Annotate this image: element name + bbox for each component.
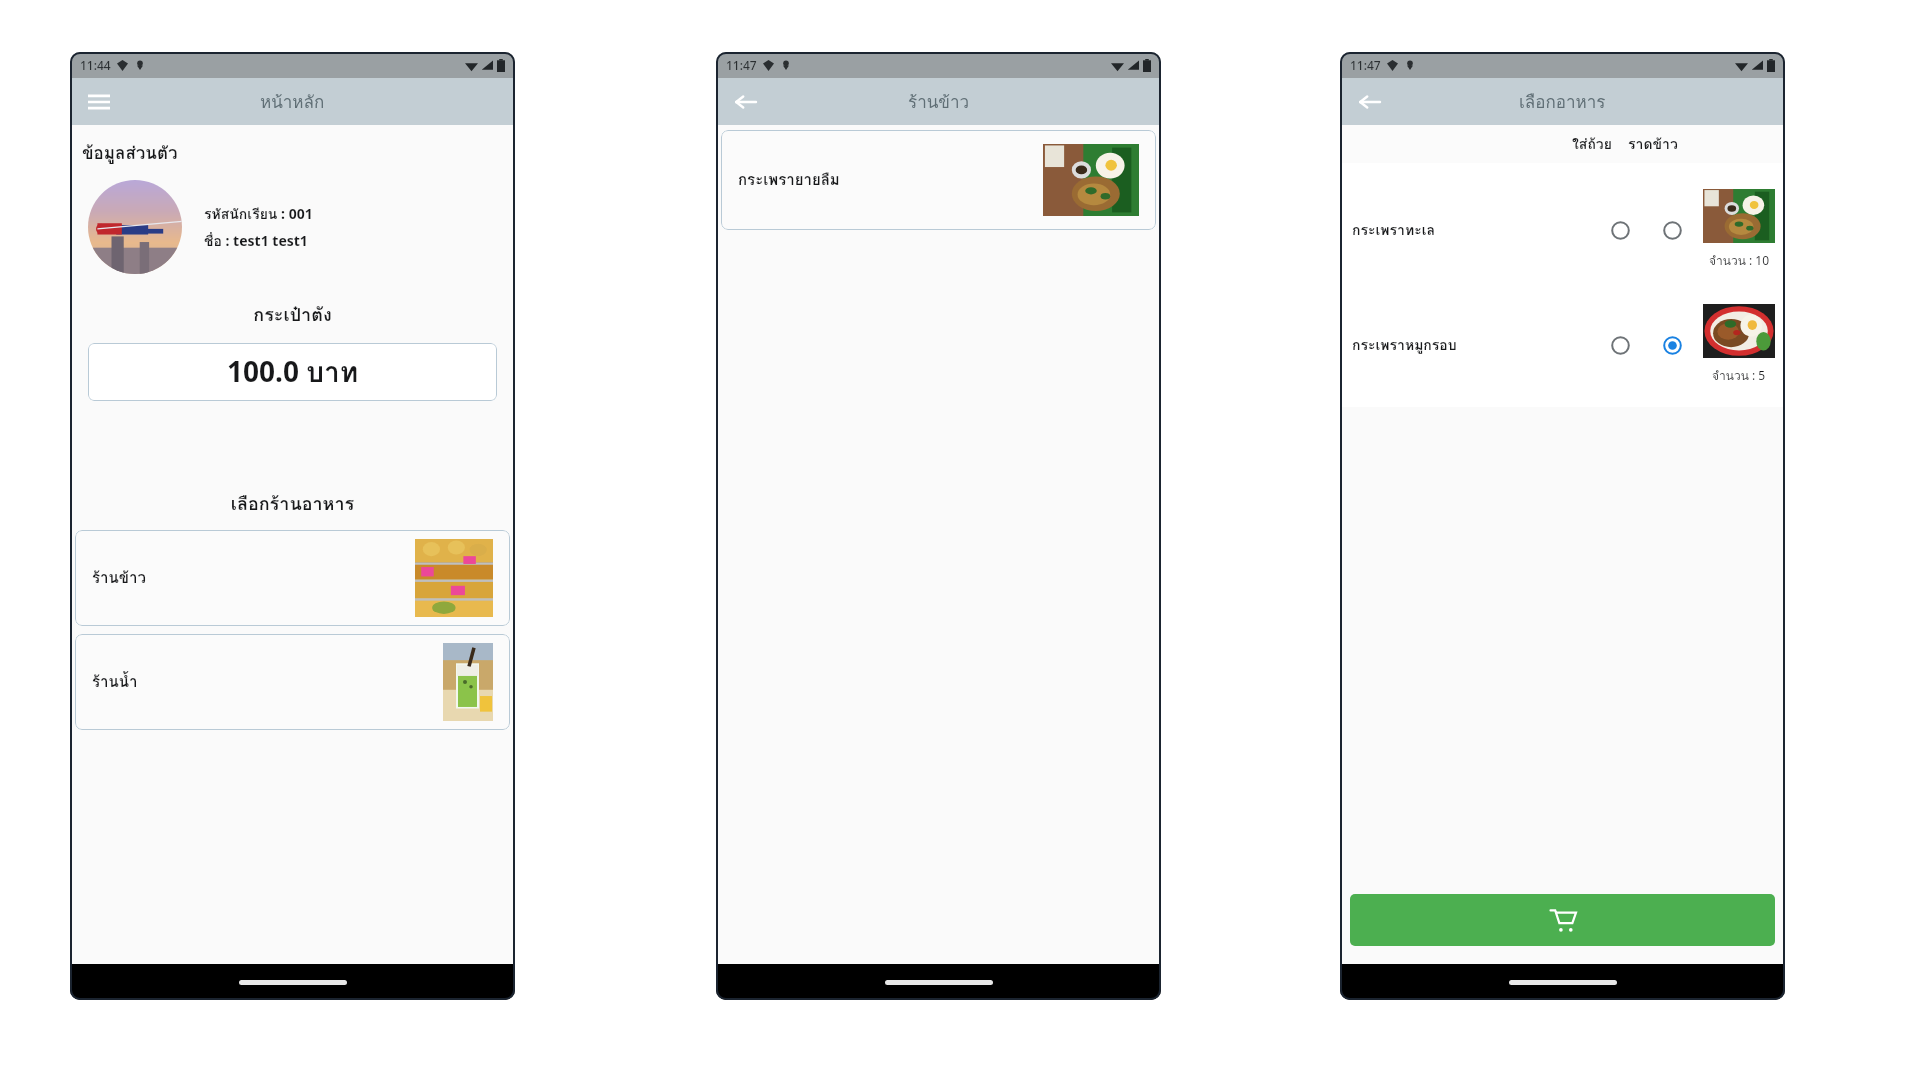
button[interactable]: กระเพรายายลืม: [721, 130, 1156, 230]
staticText: จำนวน : 5: [1712, 366, 1766, 385]
staticText: เลือกร้านอาหาร: [70, 489, 515, 518]
button[interactable]: ใส่ถ้วย: [1603, 328, 1637, 362]
button[interactable]: Back: [728, 85, 762, 119]
staticText: 11:47: [726, 57, 757, 73]
staticText: ร้านข้าว: [92, 566, 146, 590]
staticText: ชื่อ : test1 test1: [204, 230, 308, 252]
staticText: หน้าหลัก: [260, 88, 325, 115]
staticText: กระเพรายายลืม: [738, 168, 840, 192]
staticText: 11:47: [1350, 57, 1381, 73]
button[interactable]: ราดข้าว: [1655, 213, 1689, 247]
button[interactable]: ราดข้าว: [1655, 328, 1689, 362]
staticText: ใส่ถ้วย: [1572, 133, 1612, 155]
staticText: ร้านน้ำ: [92, 670, 138, 694]
staticText: รหัสนักเรียน : 001: [204, 203, 313, 225]
staticText: ราดข้าว: [1628, 133, 1678, 155]
button[interactable]: Menu: [82, 85, 116, 119]
staticText: กระเป๋าตัง: [70, 300, 515, 329]
button[interactable]: Back: [1352, 85, 1386, 119]
button[interactable]: Add to cart: [1350, 894, 1775, 946]
staticText: 100.0 บาท: [227, 350, 359, 395]
staticText: จำนวน : 10: [1709, 251, 1770, 270]
staticText: 11:44: [80, 57, 111, 73]
button[interactable]: ร้านน้ำ: [75, 634, 510, 730]
button[interactable]: 100.0 บาท: [88, 343, 497, 401]
staticText: ข้อมูลส่วนตัว: [82, 139, 178, 166]
staticText: ร้านข้าว: [908, 88, 970, 115]
button[interactable]: ร้านข้าว: [75, 530, 510, 626]
staticText: เลือกอาหาร: [1519, 88, 1606, 115]
staticText: กระเพราหมูกรอบ: [1352, 334, 1457, 356]
staticText: กระเพราทะเล: [1352, 219, 1435, 241]
button[interactable]: ใส่ถ้วย: [1603, 213, 1637, 247]
